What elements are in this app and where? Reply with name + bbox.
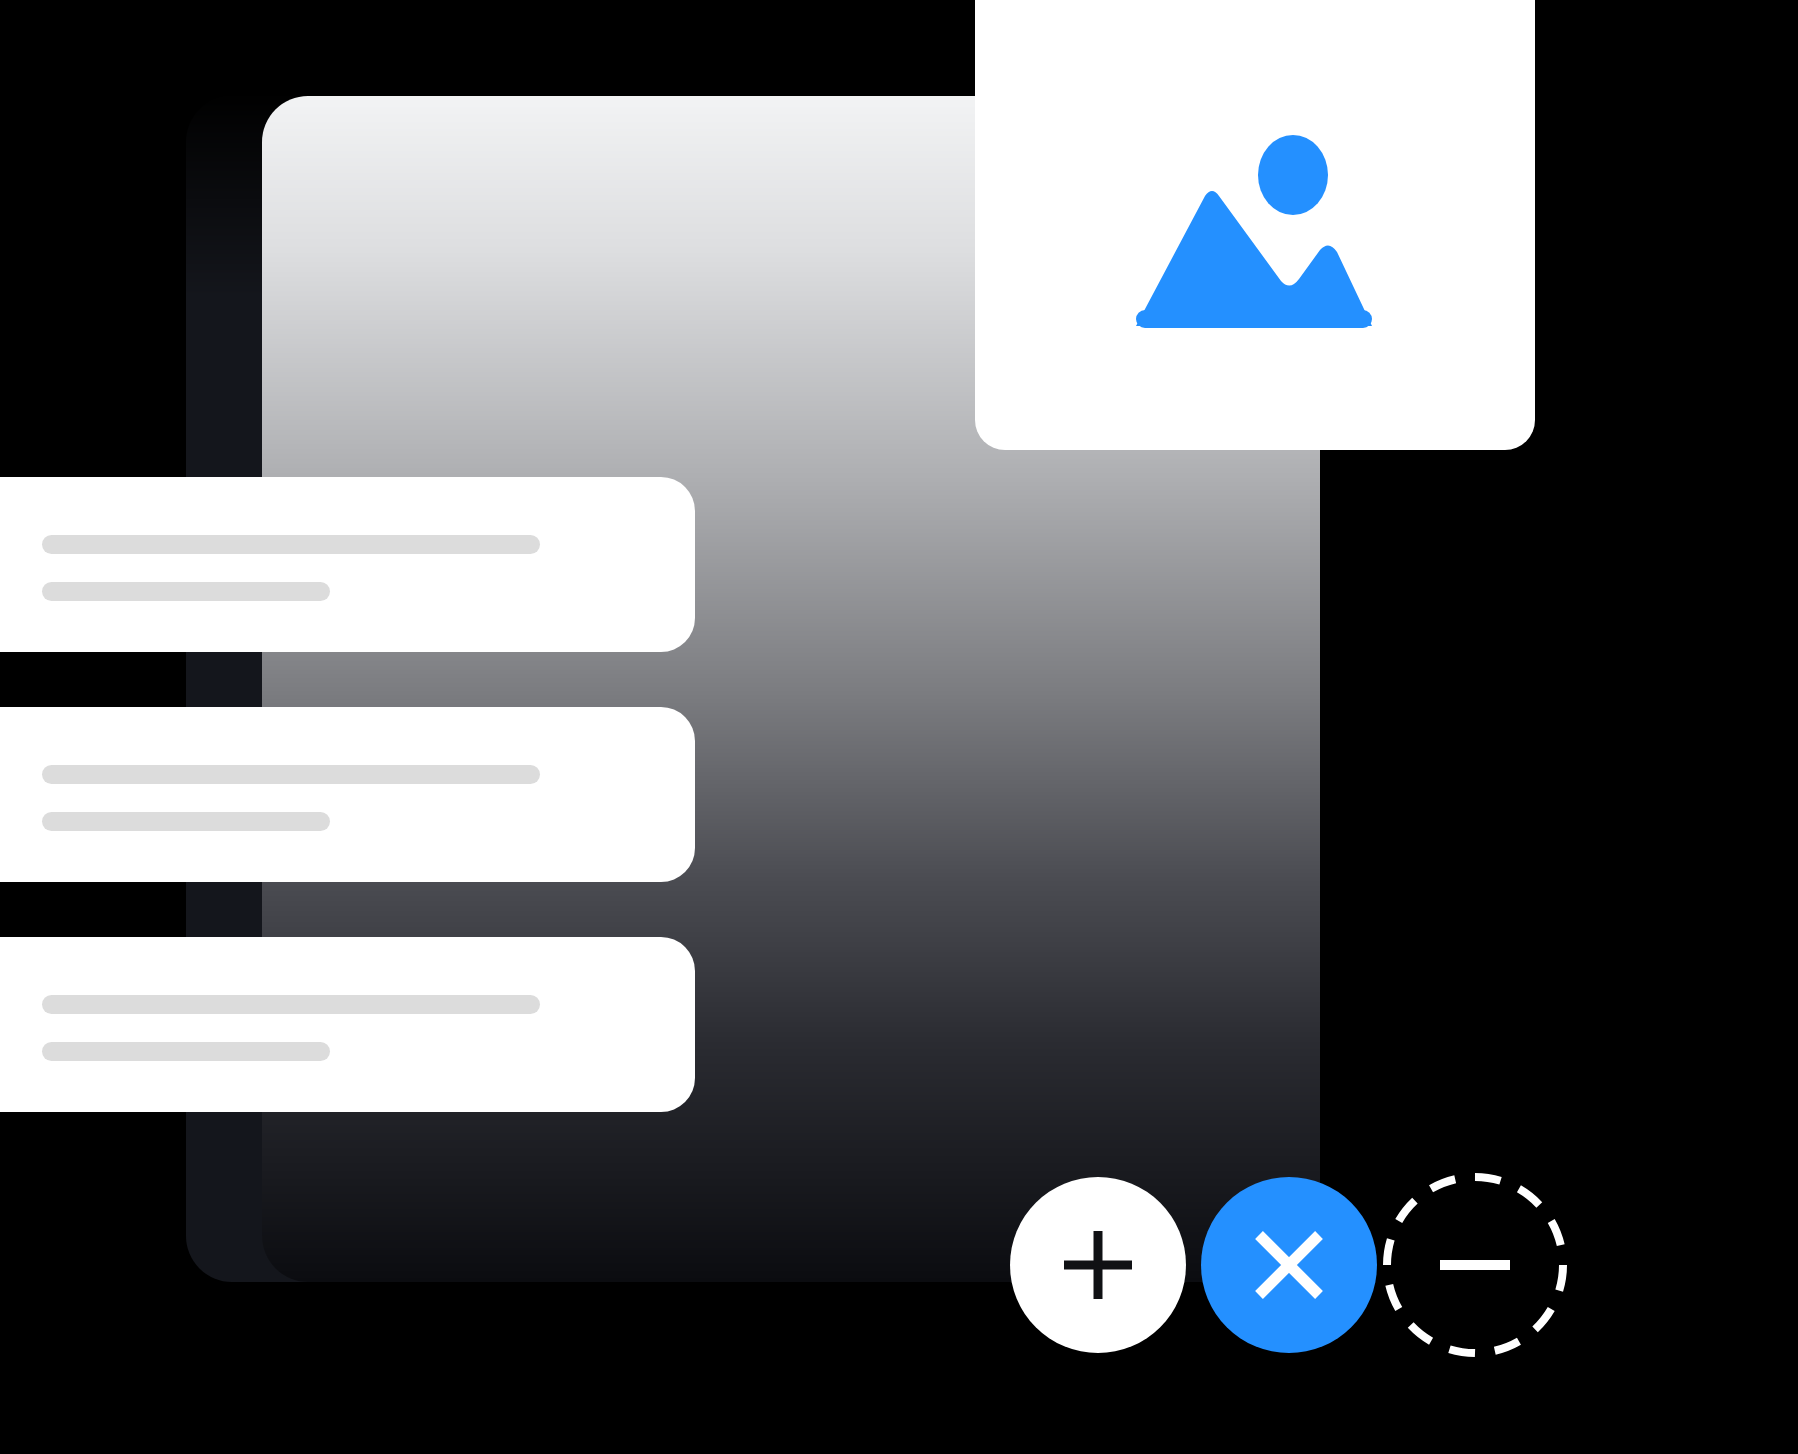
- button[interactable]: Image preview: [0, 0, 1798, 1454]
- button[interactable]: [0, 0, 1798, 1454]
- button[interactable]: Remove: [0, 0, 1798, 1454]
- button[interactable]: [0, 0, 1798, 1454]
- button[interactable]: Close: [0, 0, 1798, 1454]
- button[interactable]: [0, 0, 1798, 1454]
- button[interactable]: Add: [0, 0, 1798, 1454]
